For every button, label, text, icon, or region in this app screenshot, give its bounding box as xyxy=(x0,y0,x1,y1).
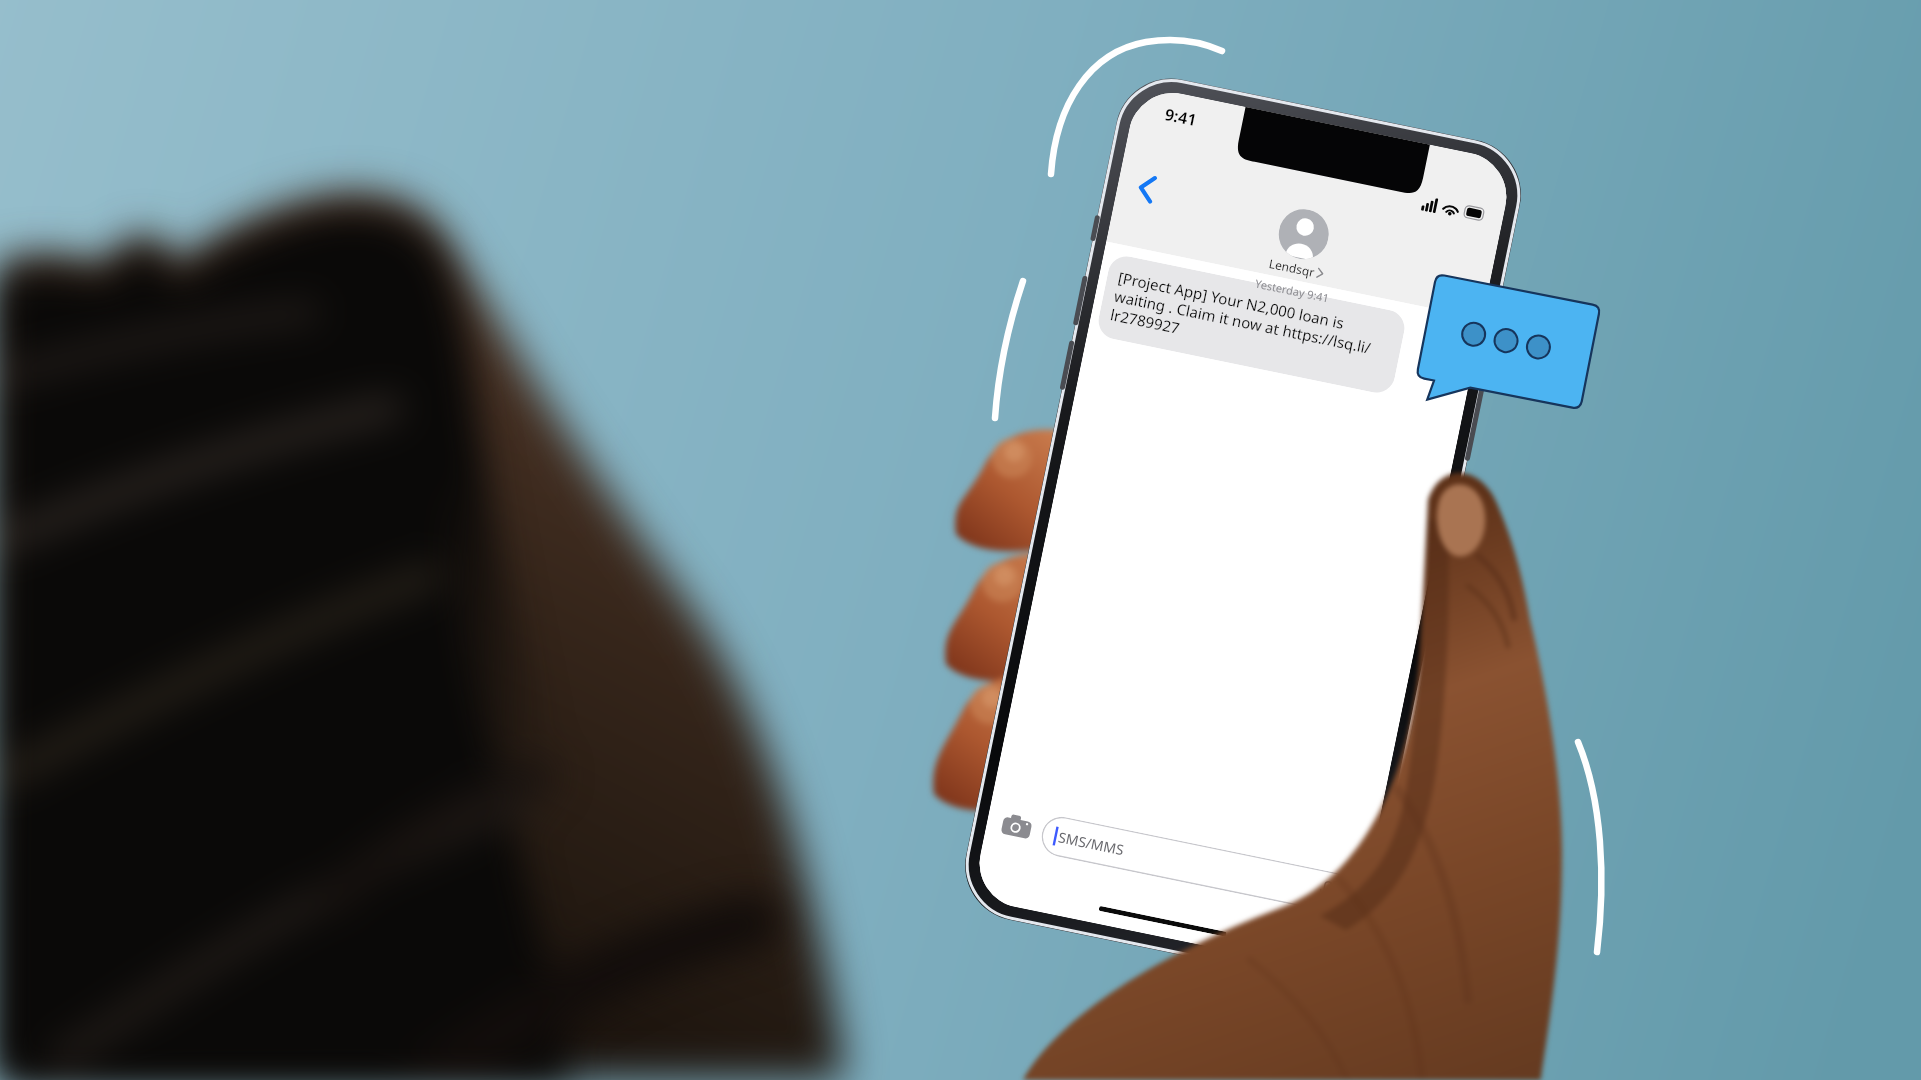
button[interactable]: SMS/MMS xyxy=(1038,813,1356,916)
staticText: Lendsqr xyxy=(1268,255,1316,280)
button[interactable]: Back xyxy=(1124,165,1171,212)
staticText: 9:41 xyxy=(1163,103,1199,131)
button[interactable]: Camera xyxy=(998,809,1035,846)
staticText: SMS/MMS xyxy=(1057,827,1126,859)
staticText: Yesterday 9:41 xyxy=(1103,244,1482,336)
staticText: [Project App] Your N2,000 loan is waitin… xyxy=(1109,267,1395,380)
button[interactable]: [Project App] Your N2,000 loan is waitin… xyxy=(1095,253,1408,396)
button[interactable]: Lendsqr xyxy=(1268,204,1336,282)
